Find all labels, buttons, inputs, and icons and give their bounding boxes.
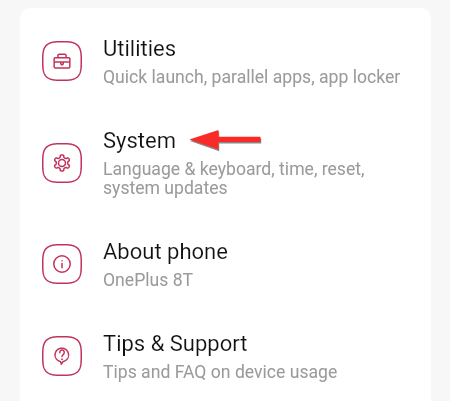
other: System — [42, 143, 82, 183]
other: Utilities — [42, 41, 82, 81]
button[interactable]: System — [20, 113, 431, 212]
button[interactable]: Tips and Support — [20, 316, 431, 396]
button[interactable]: Utilities — [20, 8, 431, 113]
staticText: Quick launch, parallel apps, app locker — [103, 67, 401, 88]
staticText: System — [103, 128, 176, 154]
staticText: About phone — [103, 239, 228, 265]
staticText: Tips & Support — [103, 331, 248, 357]
other: About phone — [42, 244, 82, 284]
staticText: Tips and FAQ on device usage — [103, 362, 338, 383]
staticText: Utilities — [103, 36, 177, 62]
staticText: Language & keyboard, time, reset, system… — [103, 159, 365, 199]
button[interactable]: About phone — [20, 212, 431, 316]
staticText: OnePlus 8T — [103, 270, 194, 291]
other: Tips and Support — [42, 336, 82, 376]
